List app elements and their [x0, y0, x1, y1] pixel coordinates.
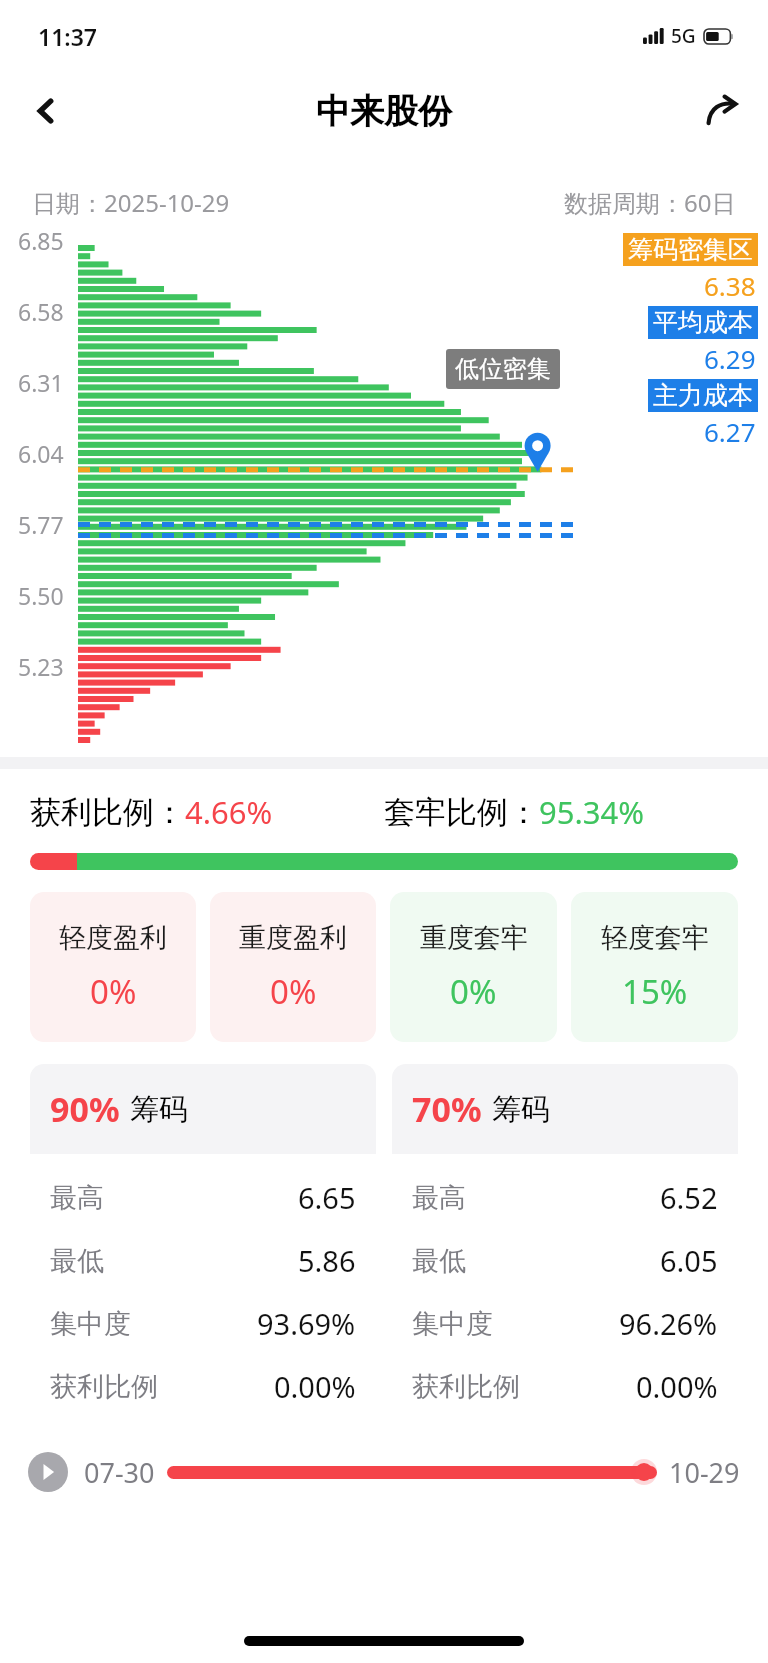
staticText: 0.00% [636, 1367, 718, 1406]
staticText: 6.52 [660, 1178, 718, 1217]
staticText: 集中度 [412, 1307, 493, 1341]
staticText: 中来股份 [316, 90, 452, 133]
staticText: 平均成本 [653, 307, 753, 338]
staticText: 5.77 [18, 509, 64, 540]
staticText: 获利比例： [30, 793, 185, 832]
staticText: 6.65 [298, 1178, 356, 1217]
staticText: 最高 [50, 1181, 104, 1215]
staticText: 6.27 [704, 414, 756, 449]
button[interactable]: 轻度盈利 [30, 892, 196, 1042]
staticText: 0.00% [274, 1367, 356, 1406]
button[interactable]: 轻度套牢 [571, 892, 738, 1042]
staticText: 95.34% [539, 791, 644, 833]
button[interactable]: 70% [392, 1064, 738, 1430]
staticText: 轻度盈利 [59, 921, 167, 955]
button[interactable]: Back [18, 83, 74, 139]
button[interactable]: Play [28, 1452, 68, 1492]
staticText: 70% [412, 1086, 482, 1132]
staticText: 90% [50, 1086, 120, 1132]
staticText: 5.23 [18, 651, 64, 682]
staticText: 套牢比例： [384, 793, 539, 832]
staticText: 5G [671, 23, 696, 49]
staticText: 最高 [412, 1181, 466, 1215]
staticText: 筹码 [492, 1091, 550, 1128]
staticText: 11:37 [38, 21, 97, 52]
staticText: 10-29 [669, 1454, 740, 1491]
staticText: 轻度套牢 [601, 921, 709, 955]
staticText: 获利比例 [50, 1370, 158, 1404]
staticText: 6.05 [660, 1241, 718, 1280]
button[interactable]: 重度盈利 [210, 892, 376, 1042]
staticText: 5.86 [298, 1241, 356, 1280]
staticText: 0% [450, 969, 497, 1014]
staticText: 6.38 [704, 268, 756, 303]
button[interactable]: 重度套牢 [390, 892, 557, 1042]
staticText: 15% [622, 969, 688, 1014]
staticText: 0% [90, 969, 137, 1014]
staticText: 96.26% [619, 1304, 718, 1343]
button[interactable]: Share [694, 83, 750, 139]
staticText: 获利比例 [412, 1370, 520, 1404]
staticText: 筹码 [130, 1091, 188, 1128]
staticText: 低位密集 [455, 354, 551, 384]
staticText: 筹码密集区 [628, 234, 753, 265]
staticText: 07-30 [84, 1454, 155, 1491]
staticText: 6.85 [18, 225, 64, 256]
staticText: 日期：2025-10-29 [32, 186, 230, 219]
staticText: 5.50 [18, 580, 64, 611]
staticText: 数据周期：60日 [564, 186, 736, 219]
button[interactable] [167, 1456, 657, 1488]
staticText: 6.04 [18, 438, 64, 469]
staticText: 6.58 [18, 296, 64, 327]
staticText: 重度套牢 [420, 921, 528, 955]
staticText: 6.29 [704, 341, 756, 376]
staticText: 主力成本 [653, 380, 753, 411]
staticText: 最低 [412, 1244, 466, 1278]
staticText: 最低 [50, 1244, 104, 1278]
staticText: 集中度 [50, 1307, 131, 1341]
staticText: 4.66% [185, 791, 273, 833]
staticText: 93.69% [257, 1304, 356, 1343]
button[interactable]: 90% [30, 1064, 376, 1430]
staticText: 0% [270, 969, 317, 1014]
staticText: 重度盈利 [239, 921, 347, 955]
button[interactable] [30, 853, 738, 870]
staticText: 6.31 [18, 367, 64, 398]
